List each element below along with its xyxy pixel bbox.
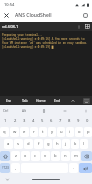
button[interactable]: Clipboard — [61, 107, 69, 115]
staticText: i — [69, 129, 71, 135]
staticText: ?123 — [2, 166, 9, 170]
staticText: [cloudshell:warning]:e:0:09:16] A few mo… — [2, 37, 90, 41]
staticText: vd-608-1 — [2, 24, 19, 29]
button[interactable]: Sessions — [83, 22, 91, 31]
staticText: t — [42, 129, 44, 135]
staticText: m — [74, 153, 78, 159]
button[interactable]: Symbols — [0, 163, 10, 173]
staticText: p — [87, 129, 90, 135]
staticText: 0 — [86, 118, 89, 124]
staticText: 4 — [32, 118, 35, 124]
button[interactable]: 8 — [65, 116, 74, 126]
staticText: 9 — [77, 118, 80, 124]
staticText: a — [7, 141, 10, 147]
button[interactable]: v — [41, 151, 50, 161]
button[interactable]: p — [84, 127, 92, 137]
button[interactable]: Arrow keys — [65, 96, 81, 105]
button[interactable]: y — [48, 127, 56, 137]
button[interactable]: Backspace — [81, 151, 92, 161]
staticText: z — [15, 153, 17, 159]
button[interactable]: More options — [74, 22, 83, 31]
staticText: o — [78, 129, 81, 135]
button[interactable]: Alt — [22, 109, 27, 113]
button[interactable]: 0 — [83, 116, 92, 126]
button[interactable]: Hide keyboard — [5, 177, 10, 182]
button[interactable]: o — [75, 127, 83, 137]
staticText: f — [38, 141, 40, 147]
button[interactable]: Esc — [0, 96, 17, 105]
staticText: c — [34, 153, 37, 159]
staticText: , — [15, 165, 17, 171]
button[interactable]: Enter — [79, 163, 92, 173]
button[interactable]: 2 — [10, 116, 20, 126]
button[interactable]: g — [44, 139, 52, 149]
button[interactable]: 4 — [29, 116, 38, 126]
staticText: Your VM instance 'vd' was scheduled in a… — [2, 41, 88, 45]
staticText: k — [74, 141, 77, 147]
button[interactable]: More — [82, 107, 90, 115]
staticText: Esc — [6, 98, 12, 103]
button[interactable]: d — [24, 139, 33, 149]
button[interactable]: 9 — [74, 116, 83, 126]
staticText: j — [65, 141, 67, 147]
staticText: Home — [36, 98, 46, 103]
button[interactable]: u — [57, 127, 65, 137]
staticText: Alt — [22, 109, 27, 113]
button[interactable]: f — [34, 139, 43, 149]
button[interactable]: h — [53, 139, 61, 149]
button[interactable]: s — [14, 139, 23, 149]
staticText: w — [13, 129, 17, 135]
staticText: Ctrl — [3, 109, 9, 113]
staticText: . — [73, 165, 75, 171]
button[interactable]: Tab — [17, 96, 33, 105]
button[interactable]: Hide keyboard — [81, 96, 92, 105]
staticText: 1 — [4, 118, 7, 124]
staticText: y — [51, 129, 54, 135]
button[interactable]: j — [62, 139, 70, 149]
staticText: 3 — [23, 118, 26, 124]
staticText: 7 — [59, 118, 62, 124]
button[interactable]: Home — [33, 96, 49, 105]
button[interactable]: x — [21, 151, 30, 161]
button[interactable]: c — [31, 151, 40, 161]
button[interactable]: vd-608-1 — [2, 24, 19, 29]
staticText: q — [3, 129, 6, 135]
button[interactable]: l — [80, 139, 88, 149]
button[interactable]: w — [10, 127, 19, 137]
button[interactable]: b — [51, 151, 60, 161]
button[interactable]: Gboard menu — [0, 105, 12, 116]
staticText: e — [23, 129, 26, 135]
button[interactable]: r — [30, 127, 38, 137]
staticText: 8 — [68, 118, 71, 124]
button[interactable]: n — [61, 151, 70, 161]
button[interactable]: Shift — [0, 151, 10, 161]
staticText: [cloudshell:warning]:e:0:09:19] █ — [2, 45, 54, 49]
button[interactable]: k — [71, 139, 79, 149]
staticText: End — [54, 98, 61, 103]
staticText: Preparing your terminal... — [2, 33, 43, 37]
button[interactable]: , — [11, 163, 20, 173]
button[interactable]: End — [49, 96, 65, 105]
button[interactable]: Open in new window — [79, 9, 92, 22]
button[interactable]: a — [4, 139, 13, 149]
button[interactable]: q — [0, 127, 9, 137]
button[interactable]: 5 — [38, 116, 47, 126]
button[interactable]: m — [71, 151, 80, 161]
button[interactable]: Close — [0, 9, 13, 22]
button[interactable]: 6 — [47, 116, 56, 126]
staticText: ANS CloudShell — [15, 12, 79, 19]
button[interactable]: 3 — [20, 116, 29, 126]
staticText: 2 — [14, 118, 17, 124]
staticText: s — [17, 141, 20, 147]
button[interactable]: e — [20, 127, 29, 137]
staticText: 10:54 — [4, 2, 15, 7]
button[interactable]: t — [39, 127, 47, 137]
button[interactable]: z — [11, 151, 20, 161]
button[interactable]: 7 — [56, 116, 65, 126]
staticText: v — [44, 153, 47, 159]
button[interactable]: . — [69, 163, 78, 173]
button[interactable]: 1 — [0, 116, 10, 126]
button[interactable]: i — [66, 127, 74, 137]
button[interactable]: Sticker — [40, 107, 48, 115]
